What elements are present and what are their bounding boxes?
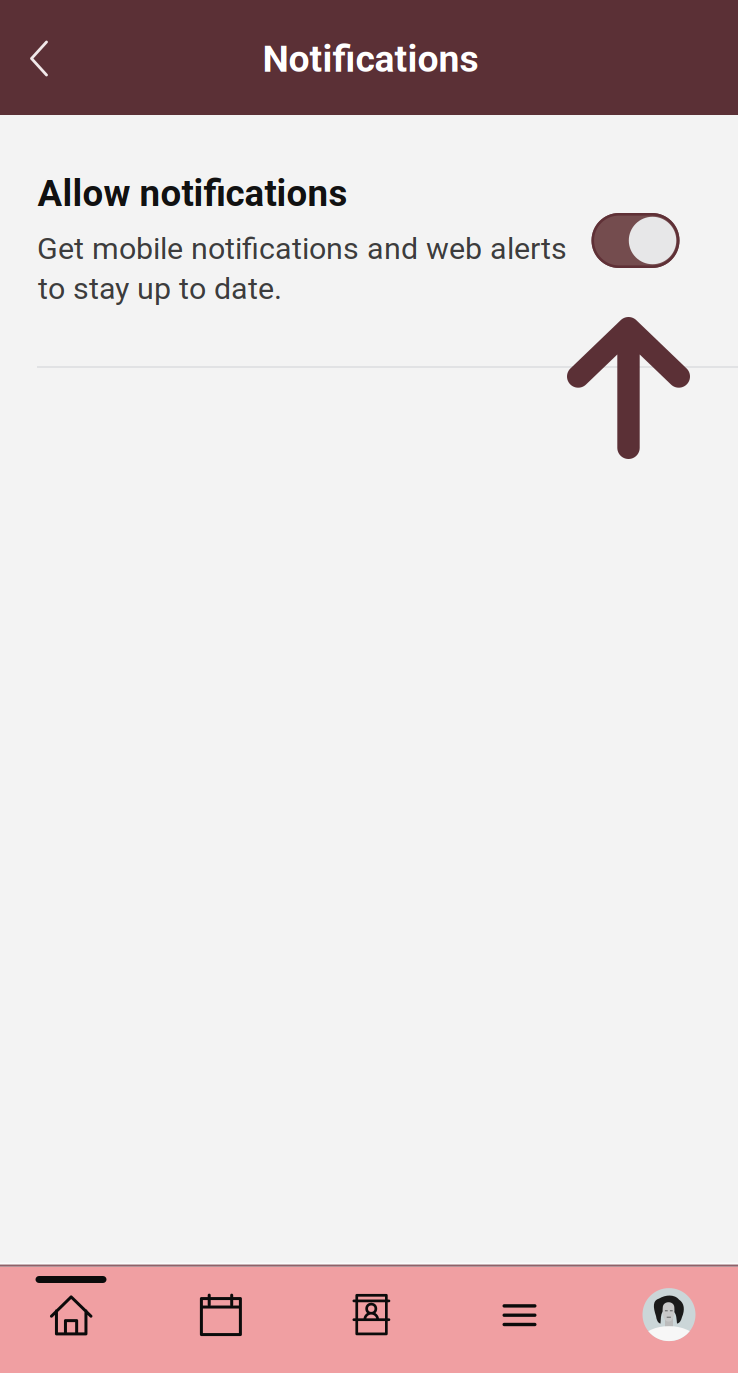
staticText: to stay up to date.: [38, 271, 282, 306]
staticText: Allow notifications: [37, 172, 347, 215]
button[interactable]: Back: [12, 22, 66, 94]
staticText: Get mobile notifications and web alerts: [37, 231, 567, 266]
button[interactable]: Allow notifications: [591, 213, 679, 268]
button[interactable]: Home: [0, 1262, 145, 1368]
staticText: Notifications: [262, 37, 478, 81]
button[interactable]: Calendar: [147, 1262, 294, 1368]
button[interactable]: Contacts: [298, 1262, 445, 1368]
button[interactable]: Profile: [595, 1262, 738, 1368]
button[interactable]: Menu: [446, 1262, 593, 1368]
